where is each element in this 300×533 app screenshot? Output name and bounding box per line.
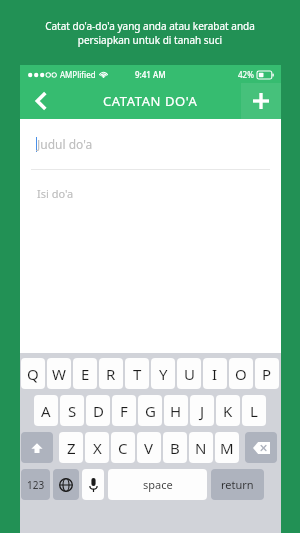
staticText: K <box>223 401 233 421</box>
button[interactable]: T <box>125 358 149 389</box>
staticText: 123 <box>27 478 45 492</box>
staticText: H <box>170 401 182 421</box>
button[interactable]: N <box>189 432 213 463</box>
staticText: J <box>200 401 205 421</box>
staticText: T <box>133 364 142 384</box>
staticText: AMPlified <box>60 69 96 80</box>
button[interactable]: P <box>255 358 279 389</box>
staticText: D <box>93 401 104 421</box>
staticText: CATATAN DO'A <box>103 92 198 110</box>
button[interactable]: Change keyboard language <box>53 469 79 500</box>
staticText: P <box>262 364 272 384</box>
staticText: B <box>170 438 180 458</box>
staticText: space <box>143 477 173 492</box>
button[interactable]: R <box>99 358 123 389</box>
button[interactable]: return <box>211 469 264 500</box>
button[interactable]: space <box>108 469 207 500</box>
staticText: C <box>118 438 128 458</box>
button[interactable]: Shift <box>21 432 53 463</box>
staticText: W <box>52 364 66 384</box>
button[interactable]: L <box>242 395 266 426</box>
button[interactable]: W <box>47 358 71 389</box>
staticText: O <box>235 364 247 384</box>
staticText: Y <box>159 364 168 384</box>
button[interactable]: 123 <box>21 469 50 500</box>
button[interactable]: C <box>111 432 135 463</box>
button[interactable]: S <box>60 395 84 426</box>
button[interactable]: Judul do'a <box>20 119 281 169</box>
button[interactable]: I <box>203 358 227 389</box>
button[interactable]: Add <box>241 83 281 119</box>
staticText: Q <box>27 364 39 384</box>
button[interactable]: E <box>73 358 97 389</box>
button[interactable]: Voice input <box>82 469 104 500</box>
staticText: Catat do'a-do'a yang anda atau kerabat a… <box>45 19 255 47</box>
staticText: I <box>212 364 218 384</box>
staticText: A <box>41 401 51 421</box>
staticText: S <box>68 401 77 421</box>
staticText: X <box>93 438 102 458</box>
staticText: Judul do'a <box>37 136 93 152</box>
button[interactable]: J <box>190 395 214 426</box>
button[interactable]: A <box>34 395 58 426</box>
button[interactable]: F <box>112 395 136 426</box>
button[interactable]: V <box>137 432 161 463</box>
button[interactable]: M <box>215 432 239 463</box>
staticText: F <box>120 401 128 421</box>
staticText: 9:41 AM <box>135 69 166 80</box>
staticText: G <box>145 401 156 421</box>
staticText: U <box>184 364 195 384</box>
button[interactable]: K <box>216 395 240 426</box>
button[interactable]: U <box>177 358 201 389</box>
staticText: N <box>195 438 207 458</box>
staticText: V <box>144 438 154 458</box>
button[interactable]: Q <box>21 358 45 389</box>
button[interactable]: D <box>86 395 110 426</box>
button[interactable]: B <box>163 432 187 463</box>
staticText: Isi do'a <box>37 186 74 201</box>
staticText: R <box>106 364 116 384</box>
button[interactable]: O <box>229 358 253 389</box>
button[interactable]: H <box>164 395 188 426</box>
staticText: return <box>221 477 254 492</box>
button[interactable]: Y <box>151 358 175 389</box>
staticText: E <box>81 364 90 384</box>
button[interactable]: X <box>85 432 109 463</box>
button[interactable]: G <box>138 395 162 426</box>
staticText: M <box>220 438 234 458</box>
staticText: L <box>250 401 258 421</box>
staticText: 42% <box>238 69 254 80</box>
button[interactable]: Z <box>59 432 83 463</box>
button[interactable]: Back <box>20 83 62 119</box>
staticText: Z <box>67 438 76 458</box>
button[interactable]: Backspace <box>245 432 277 463</box>
